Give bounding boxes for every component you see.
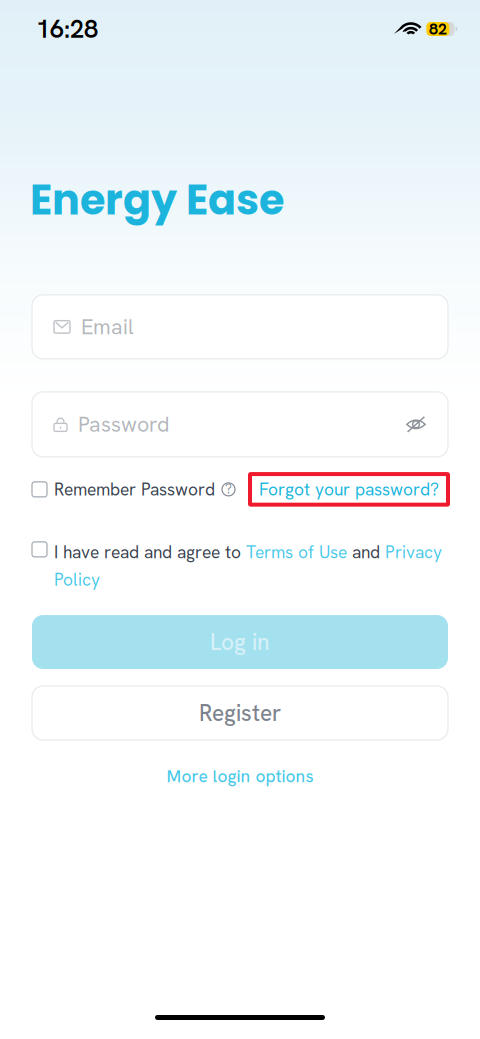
- staticText: ?: [225, 480, 232, 498]
- button[interactable]: More login options: [160, 762, 319, 791]
- staticText: More login options: [166, 765, 313, 788]
- button[interactable]: Remember Password: [32, 478, 235, 501]
- staticText: Log in: [210, 627, 270, 657]
- staticText: Policy: [54, 568, 100, 591]
- staticText: I have read and agree to: [54, 541, 246, 563]
- staticText: Register: [199, 698, 281, 728]
- button[interactable]: Policy: [54, 568, 100, 591]
- staticText: Email: [81, 313, 134, 341]
- staticText: Password: [78, 410, 170, 438]
- button[interactable]: Forgot your password?: [250, 474, 448, 505]
- button[interactable]: Agree to terms: [32, 541, 47, 557]
- button[interactable]: Terms of Use: [246, 541, 347, 563]
- staticText: 16:28: [36, 12, 98, 45]
- staticText: Privacy: [385, 541, 442, 563]
- staticText: Forgot your password?: [259, 478, 439, 501]
- staticText: Energy Ease: [30, 171, 284, 229]
- staticText: 82: [429, 19, 447, 39]
- button[interactable]: Privacy: [385, 541, 442, 563]
- staticText: Remember Password: [54, 478, 215, 501]
- button[interactable]: Register: [32, 686, 448, 740]
- button[interactable]: Log in: [32, 615, 448, 669]
- staticText: and: [347, 541, 385, 563]
- button[interactable]: Show password: [396, 407, 426, 441]
- staticText: Terms of Use: [246, 541, 347, 563]
